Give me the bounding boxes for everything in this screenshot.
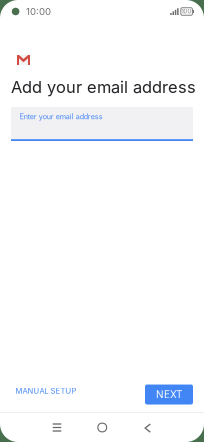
button[interactable]: NEXT	[145, 384, 193, 404]
button[interactable]: Recent apps	[45, 415, 69, 439]
button[interactable]: Home	[90, 415, 114, 439]
staticText: 10:00	[26, 6, 51, 17]
staticText: 100	[182, 8, 192, 15]
staticText: Enter your email address	[20, 112, 103, 121]
staticText: MANUAL SETUP	[15, 386, 76, 396]
staticText: NEXT	[156, 388, 182, 401]
button[interactable]: MANUAL SETUP	[11, 382, 81, 400]
button[interactable]: Back	[135, 415, 159, 439]
staticText: Add your email address	[11, 77, 196, 97]
